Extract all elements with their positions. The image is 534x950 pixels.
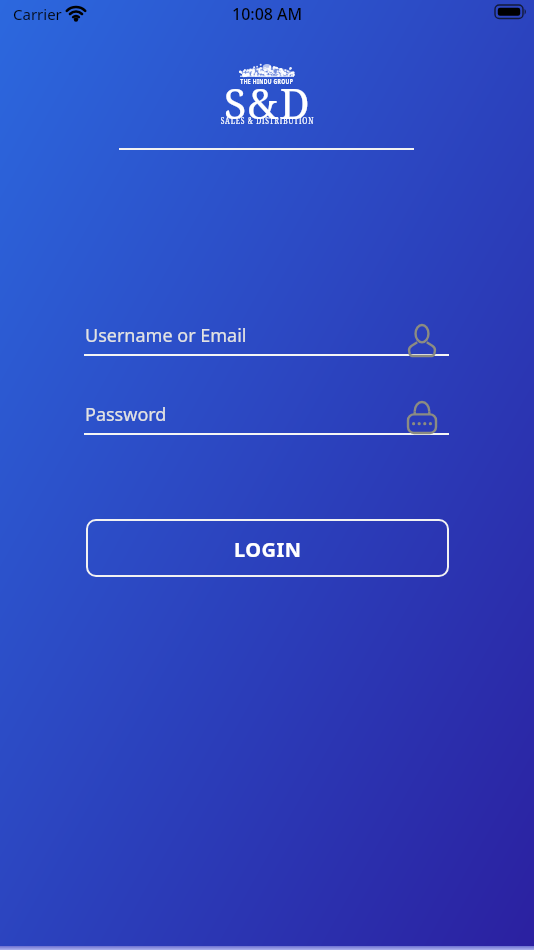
staticText: Username or Email	[85, 323, 247, 348]
staticText: Password	[85, 402, 167, 427]
button[interactable]: LOGIN	[86, 519, 449, 577]
staticText: THE HINDU GROUP	[240, 77, 294, 87]
staticText: S&D	[224, 75, 312, 131]
button[interactable]: Password	[84, 399, 449, 435]
button[interactable]: Username or Email	[84, 320, 449, 356]
staticText: LOGIN	[234, 536, 302, 563]
staticText: 10:08 AM	[232, 3, 303, 25]
staticText: SALES & DISTRIBUTION	[221, 115, 314, 127]
staticText: Carrier	[13, 4, 62, 24]
